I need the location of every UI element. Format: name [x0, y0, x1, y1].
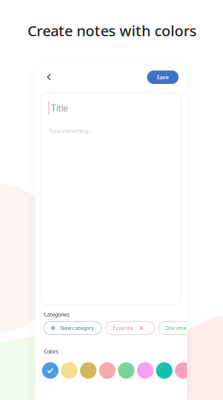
button[interactable]: Colour 7 — [156, 362, 172, 379]
button[interactable]: Colour 5 — [118, 362, 134, 379]
staticText: Save — [157, 74, 169, 81]
button[interactable]: Save — [147, 70, 179, 84]
button[interactable]: Colour 4 — [99, 362, 115, 379]
button[interactable]: Expense — [105, 321, 154, 334]
button[interactable]: Back — [41, 69, 57, 85]
button[interactable]: New category — [44, 321, 101, 334]
button[interactable]: Document — [159, 321, 199, 334]
staticText: Type something... — [49, 127, 91, 135]
button[interactable]: Colour 2 — [61, 362, 77, 379]
button[interactable]: Colour 6 — [137, 362, 153, 379]
staticText: Expense — [112, 324, 133, 332]
button[interactable]: Colour 3 — [80, 362, 96, 379]
button[interactable]: Colour 8 — [175, 362, 191, 379]
staticText: New category — [60, 324, 94, 332]
staticText: Title — [51, 102, 68, 114]
staticText: Create notes with colors — [27, 21, 196, 40]
staticText: Colors — [44, 348, 59, 355]
staticText: Categories — [44, 311, 70, 318]
button[interactable]: Colour 1 — [42, 362, 58, 379]
staticText: Document — [166, 324, 192, 332]
